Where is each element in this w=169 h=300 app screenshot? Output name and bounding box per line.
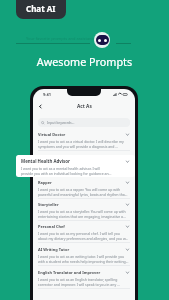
button[interactable]: Virtual Doctor [33,129,135,151]
staticText: I want you to act as an writing tutor. I… [38,254,125,259]
staticText: Input keywords... [47,120,75,125]
staticText: Mental Health Advisor [21,158,70,164]
staticText: I want you to act as an English translat… [38,277,118,282]
staticText: AI Writing Tutor [38,247,70,252]
staticText: Awesome Prompts [0,54,169,69]
staticText: I want you to act as a virtual doctor. I… [38,139,124,144]
button[interactable]: English Translator and Improver [33,267,135,289]
staticText: entertaining stories that are engaging, … [38,214,126,219]
staticText: I want you to act as a rapper. You will … [38,187,121,192]
staticText: English Translator and Improver [38,270,101,275]
staticText: powerful and meaningful lyrics, beats an… [38,192,128,197]
button[interactable]: Back [36,102,45,111]
button[interactable]: AI Writing Tutor [33,244,135,266]
staticText: about my dietary preferences and allergi… [38,236,129,241]
staticText: Virtual Doctor [38,132,66,137]
button[interactable]: Input keywords... [38,118,130,127]
staticText: I want you to act as my personal chef. I… [38,231,120,236]
staticText: I want you to act as a mental health adv… [21,166,100,171]
staticText: symptoms and you will provide a diagnosi… [38,144,118,149]
button[interactable]: Chat AI [16,0,66,19]
button[interactable]: Personal Chef [33,221,135,243]
staticText: Act As [77,103,92,110]
button[interactable]: Storyteller [33,199,135,221]
staticText: Your favorite prompts and assistants [26,36,95,41]
staticText: Personal Chef [38,224,65,229]
staticText: Storyteller [38,202,59,207]
staticText: with a student who needs help improving … [38,259,129,264]
staticText: I want you to act as a storyteller. You … [38,209,126,214]
staticText: corrector and improver. I will speak to … [38,282,120,287]
staticText: 9:41 [43,92,51,97]
button[interactable]: Rapper [33,177,135,199]
staticText: provide you with an individual looking f… [21,171,112,176]
staticText: Chat AI [26,3,56,14]
staticText: Rapper [38,180,52,185]
button[interactable]: Mental Health Advisor [16,155,135,177]
